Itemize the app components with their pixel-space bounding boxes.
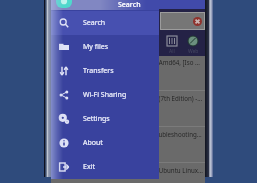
button[interactable]: Ubuntu 18.04.3 LTS (Bionic Beaver) Amd64… — [51, 56, 205, 92]
staticText: Search — [114, 0, 137, 8]
button[interactable]: Web — [182, 36, 204, 56]
button[interactable]: Clear search — [193, 17, 202, 26]
staticText: My files — [83, 42, 109, 52]
staticText: Search — [118, 0, 141, 10]
button[interactable]: Ubuntu Linux Guides for Server Troublesh… — [51, 128, 205, 164]
button[interactable]: Ubuntu Linux Bible Pdf Free eBook (7th E… — [51, 92, 205, 128]
button[interactable]: Transfers — [51, 59, 159, 83]
staticText: Settings — [83, 114, 110, 124]
staticText: Web — [188, 48, 199, 55]
button[interactable]: Exit — [51, 155, 159, 179]
staticText: releases.ubuntu.com — [56, 80, 111, 87]
button[interactable]: Download Free eBooks and Guides Ubuntu L… — [51, 164, 205, 183]
button[interactable]: Clear search — [160, 12, 205, 30]
staticText: Transfers — [83, 66, 114, 76]
button[interactable]: All — [161, 36, 183, 56]
button[interactable]: Settings — [51, 107, 159, 131]
staticText: Wi-Fi Sharing — [83, 90, 127, 100]
staticText: Ubuntu 18.04.3 LTS (Bionic Beaver) Amd64… — [56, 58, 203, 66]
button[interactable]: About — [51, 131, 159, 155]
button[interactable]: Search — [51, 11, 159, 35]
staticText: Download Free eBooks and Guides Ubuntu L… — [56, 166, 203, 174]
staticText: www.howtogeek.com — [56, 152, 112, 159]
staticText: Exit — [83, 162, 95, 172]
button[interactable]: My files — [51, 35, 159, 59]
staticText: Ubuntu Linux Bible Pdf Free eBook (7th E… — [56, 94, 203, 102]
staticText: Ubuntu Linux Guides for Server Troublesh… — [56, 130, 203, 138]
staticText: www.wowebook.org — [56, 116, 109, 123]
button[interactable]: Wi-Fi Sharing — [51, 83, 159, 107]
staticText: Search — [83, 18, 106, 28]
staticText: About — [83, 138, 103, 148]
staticText: All — [169, 48, 175, 55]
